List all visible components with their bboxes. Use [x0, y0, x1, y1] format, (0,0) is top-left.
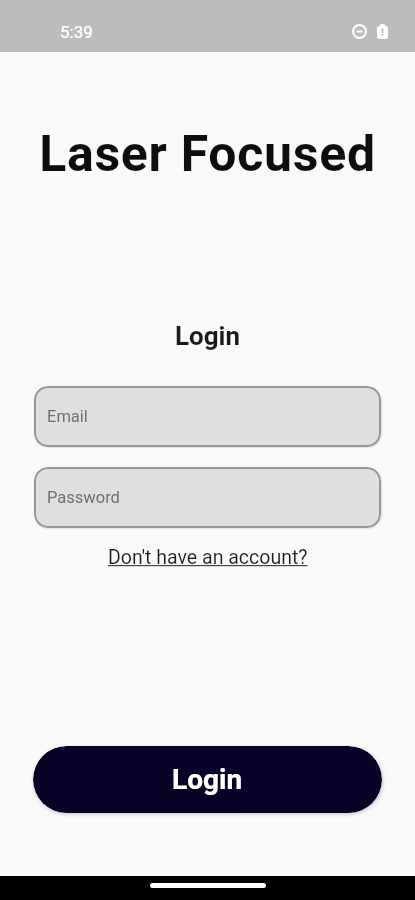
staticText: Laser Focused — [0, 125, 415, 184]
other: Do not disturb — [352, 24, 367, 39]
staticText: 5:39 — [60, 22, 93, 42]
staticText: Login — [172, 763, 243, 796]
other: Battery — [377, 24, 388, 39]
staticText: Don't have an account? — [108, 546, 308, 569]
button[interactable]: Don't have an account? — [98, 540, 318, 575]
staticText: Login — [0, 321, 415, 351]
button[interactable]: Password — [34, 467, 381, 528]
button[interactable]: Login — [33, 746, 382, 813]
staticText: Email — [47, 407, 88, 426]
staticText: Password — [47, 488, 120, 507]
button[interactable]: Email — [34, 386, 381, 447]
